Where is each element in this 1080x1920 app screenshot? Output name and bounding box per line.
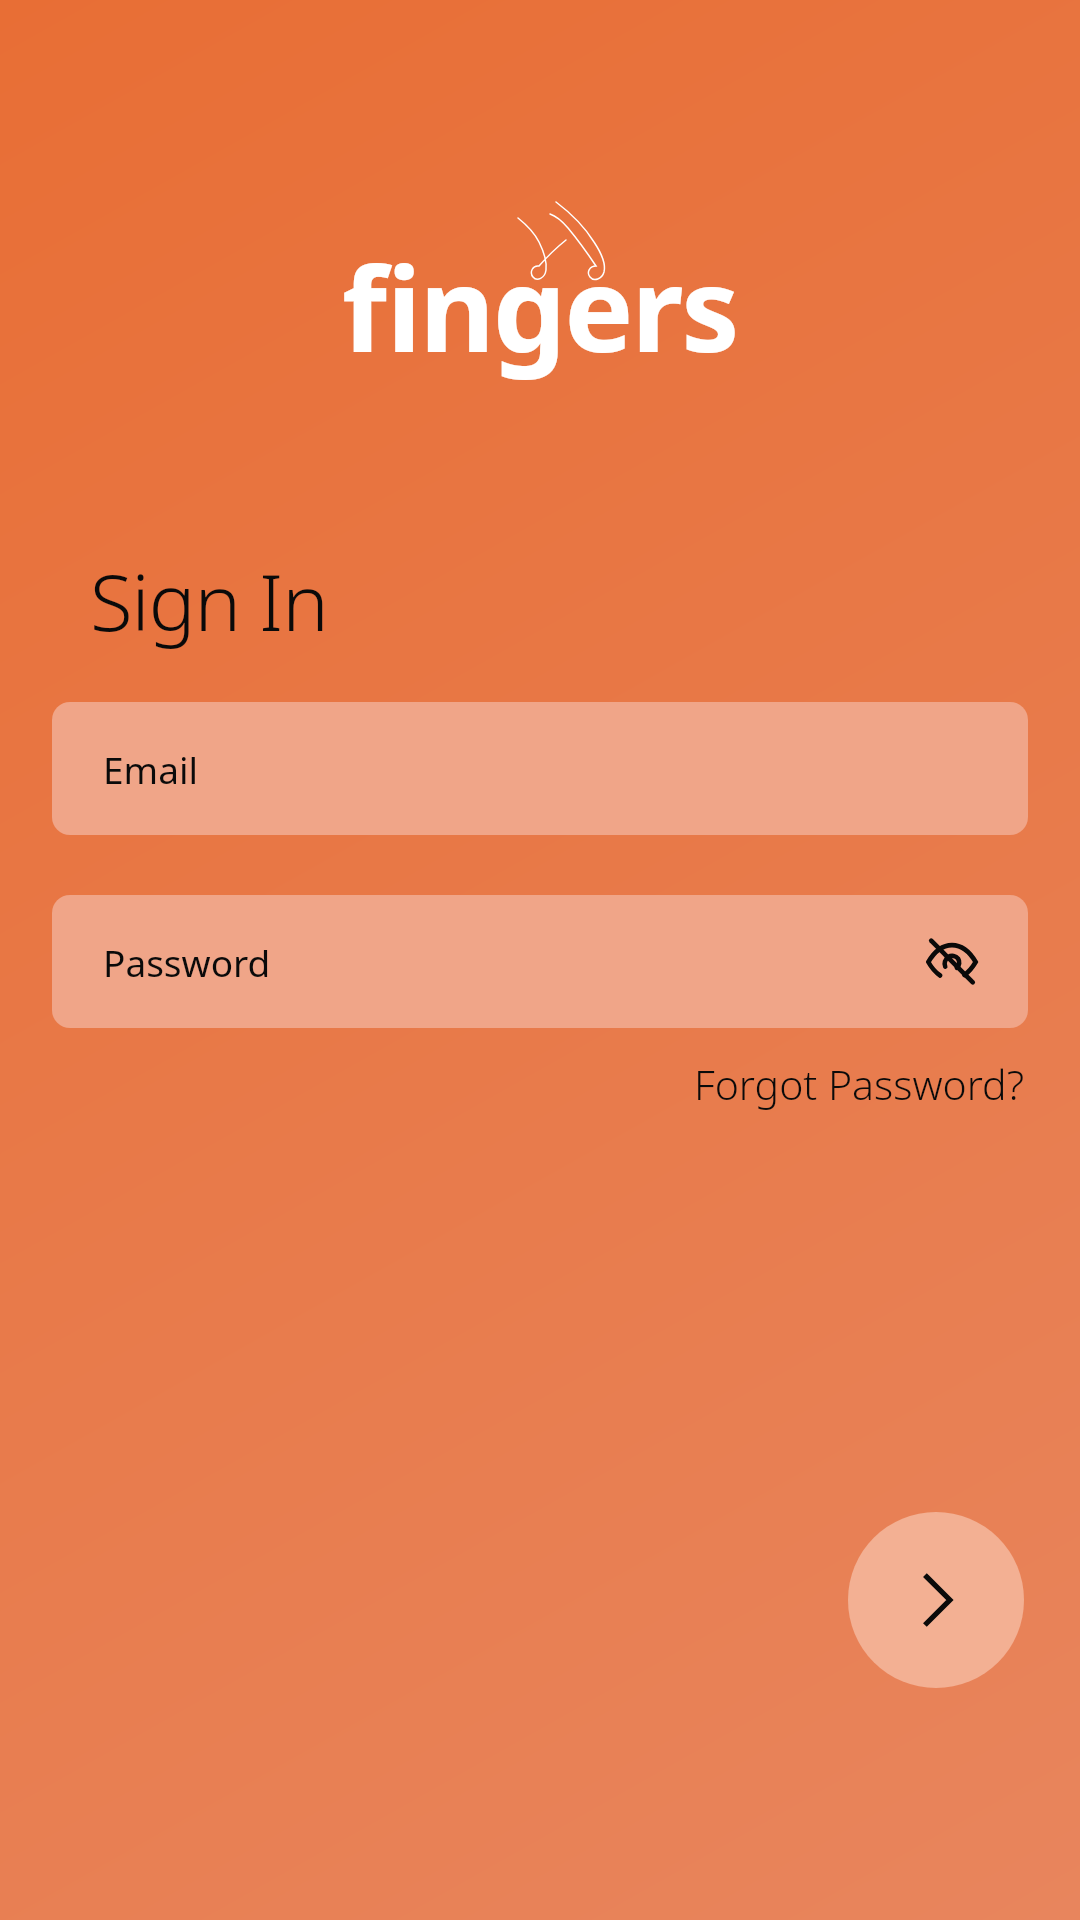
staticText: Sign In [90,548,328,654]
button[interactable]: Show password [916,926,988,998]
staticText: fingers [342,228,738,386]
button[interactable]: Password [52,895,1028,1028]
staticText: Password [103,937,271,987]
staticText: Email [103,744,199,794]
button[interactable]: Continue [848,1512,1024,1688]
button[interactable]: Forgot Password? [689,1050,1028,1118]
button[interactable]: Email [52,702,1028,835]
